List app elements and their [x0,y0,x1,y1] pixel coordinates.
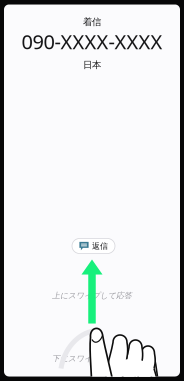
staticText: 返信 [92,241,108,251]
staticText: 090-XXXX-XXXX [21,28,162,55]
staticText: 上にスワイプして応答 [52,291,132,300]
staticText: 下にスワイプして拒否 [52,354,132,363]
staticText: 着信 [83,16,101,28]
staticText: 日本 [83,59,101,71]
button[interactable]: 返信 [72,238,115,253]
